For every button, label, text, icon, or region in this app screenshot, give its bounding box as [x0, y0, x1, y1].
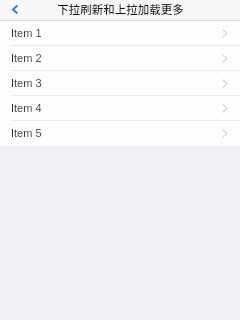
- button[interactable]: Item 2: [0, 46, 240, 71]
- staticText: Item 2: [11, 52, 42, 64]
- staticText: Item 4: [11, 102, 42, 114]
- staticText: 下拉刷新和上拉加载更多: [57, 1, 184, 18]
- staticText: Item 3: [11, 77, 42, 89]
- button[interactable]: Item 3: [0, 71, 240, 96]
- staticText: Item 1: [11, 27, 42, 39]
- button[interactable]: Item 1: [0, 21, 240, 46]
- staticText: Item 5: [11, 127, 42, 139]
- button[interactable]: Item 5: [0, 121, 240, 146]
- button[interactable]: Back: [0, 0, 30, 21]
- button[interactable]: Item 4: [0, 96, 240, 121]
